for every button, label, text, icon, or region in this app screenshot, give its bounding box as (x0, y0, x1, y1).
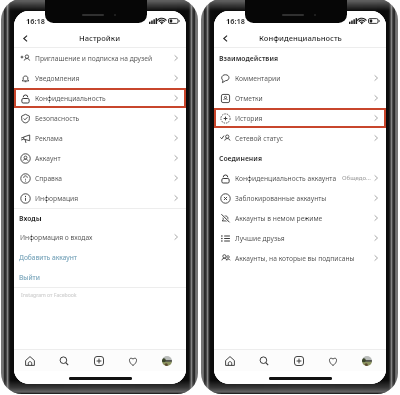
button[interactable]: Home (222, 353, 238, 369)
staticText: Соединения (219, 154, 262, 163)
button[interactable]: Activity (325, 353, 341, 369)
staticText: Добавить аккаунт (19, 253, 77, 262)
staticText: История (235, 114, 263, 123)
staticText: Выйти (19, 273, 40, 282)
button[interactable]: Activity (125, 353, 141, 369)
button[interactable]: Аккаунты, на которые вы подписаны (214, 248, 386, 268)
button[interactable]: Выйти (14, 268, 186, 287)
button[interactable]: Отметки (214, 88, 386, 108)
button[interactable]: Информация (14, 188, 186, 208)
staticText: Уведомления (35, 74, 80, 83)
button[interactable]: Add post (91, 353, 107, 369)
staticText: Заблокированные аккаунты (235, 194, 327, 203)
staticText: Безопасность (35, 114, 80, 123)
staticText: Лучшие друзья (235, 234, 285, 243)
button[interactable]: Реклама (14, 128, 186, 148)
staticText: Взаимодействия (219, 54, 279, 63)
button[interactable]: Комментарии (214, 68, 386, 88)
button[interactable]: Конфиденциальность аккаунта (214, 168, 386, 188)
button[interactable]: Back (16, 29, 34, 47)
staticText: Конфиденциальность аккаунта (235, 174, 337, 183)
staticText: Приглашение и подписка на друзей (35, 54, 153, 63)
staticText: Комментарии (235, 74, 281, 83)
button[interactable]: Информация о входах (14, 227, 186, 247)
button[interactable]: Приглашение и подписка на друзей (14, 48, 186, 68)
staticText: 16:18 (26, 16, 45, 26)
staticText: Информация (35, 194, 79, 203)
button[interactable]: Home (22, 353, 38, 369)
button[interactable]: Лучшие друзья (214, 228, 386, 248)
staticText: Общедо... (342, 174, 371, 182)
button[interactable]: Добавить аккаунт (14, 247, 186, 268)
button[interactable]: История (214, 108, 386, 128)
button[interactable]: Справка (14, 168, 186, 188)
button[interactable]: Уведомления (14, 68, 186, 88)
button[interactable]: Сетевой статус (214, 128, 386, 148)
button[interactable]: Конфиденциальность (14, 88, 186, 108)
button[interactable]: Profile (359, 353, 375, 369)
button[interactable]: Profile (159, 353, 175, 369)
button[interactable]: Аккаунт (14, 148, 186, 168)
staticText: Конфиденциальность (35, 94, 106, 103)
staticText: Конфиденциальность (259, 33, 342, 43)
button[interactable]: Аккаунты в немом режиме (214, 208, 386, 228)
staticText: Настройки (79, 33, 121, 43)
button[interactable]: Add post (291, 353, 307, 369)
staticText: Информация о входах (20, 233, 93, 242)
button[interactable]: Заблокированные аккаунты (214, 188, 386, 208)
button[interactable]: Безопасность (14, 108, 186, 128)
staticText: 16:18 (226, 16, 245, 26)
button[interactable]: Search (256, 353, 272, 369)
staticText: Входы (19, 214, 42, 223)
staticText: Отметки (235, 94, 263, 103)
staticText: Instagram от Facebook (21, 292, 77, 299)
staticText: Аккаунт (35, 154, 61, 163)
staticText: Реклама (35, 134, 63, 143)
staticText: Сетевой статус (235, 134, 283, 143)
button[interactable]: Search (56, 353, 72, 369)
button[interactable]: Back (216, 29, 234, 47)
staticText: Справка (35, 174, 63, 183)
staticText: Аккаунты, на которые вы подписаны (235, 254, 355, 263)
staticText: Аккаунты в немом режиме (235, 214, 323, 223)
